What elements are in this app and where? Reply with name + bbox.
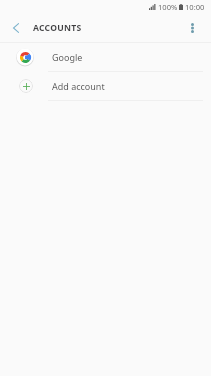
staticText: 10:00 xyxy=(185,2,205,12)
staticText: Google xyxy=(52,51,83,63)
staticText: 100% xyxy=(158,2,178,12)
button[interactable]: More options xyxy=(184,14,200,42)
staticText: Add account xyxy=(52,80,105,92)
staticText: ACCOUNTS xyxy=(33,22,82,34)
button[interactable]: Navigate up xyxy=(0,14,32,42)
button[interactable]: Google xyxy=(0,43,211,71)
button[interactable]: Add account xyxy=(0,72,211,100)
